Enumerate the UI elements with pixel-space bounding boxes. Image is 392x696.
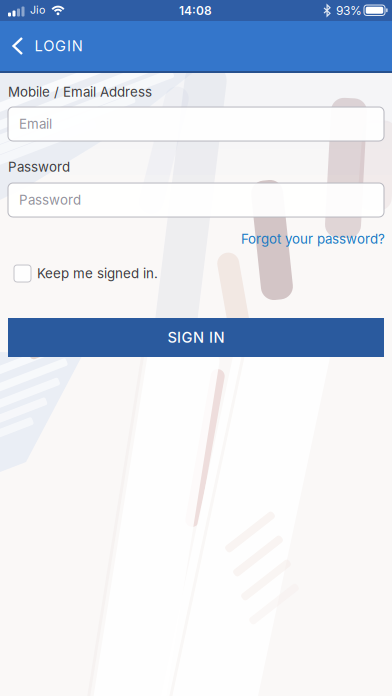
button[interactable]: Forgot your password? — [241, 231, 385, 247]
staticText: Keep me signed in. — [37, 266, 158, 281]
staticText: LOGIN — [34, 37, 83, 55]
staticText: Password — [8, 159, 70, 175]
button[interactable]: Back — [12, 21, 112, 71]
staticText: SIGN IN — [167, 329, 224, 346]
button[interactable]: Email — [8, 107, 384, 141]
staticText: Password — [19, 192, 81, 208]
staticText: Jio — [30, 3, 45, 16]
staticText: 93% — [336, 3, 362, 18]
staticText: Email — [19, 116, 52, 132]
button[interactable]: Keep me signed in. — [14, 265, 158, 282]
staticText: 14:08 — [179, 3, 212, 18]
staticText: Mobile / Email Address — [8, 84, 152, 100]
button[interactable]: Password — [8, 183, 384, 217]
button[interactable]: SIGN IN — [8, 318, 384, 357]
staticText: Forgot your password? — [241, 231, 385, 247]
